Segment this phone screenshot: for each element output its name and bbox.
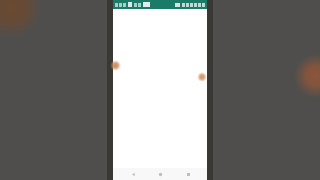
button[interactable]: Home bbox=[152, 168, 168, 180]
button[interactable]: Back bbox=[125, 168, 141, 180]
button[interactable] bbox=[113, 9, 207, 168]
button[interactable]: Recent apps bbox=[180, 168, 196, 180]
